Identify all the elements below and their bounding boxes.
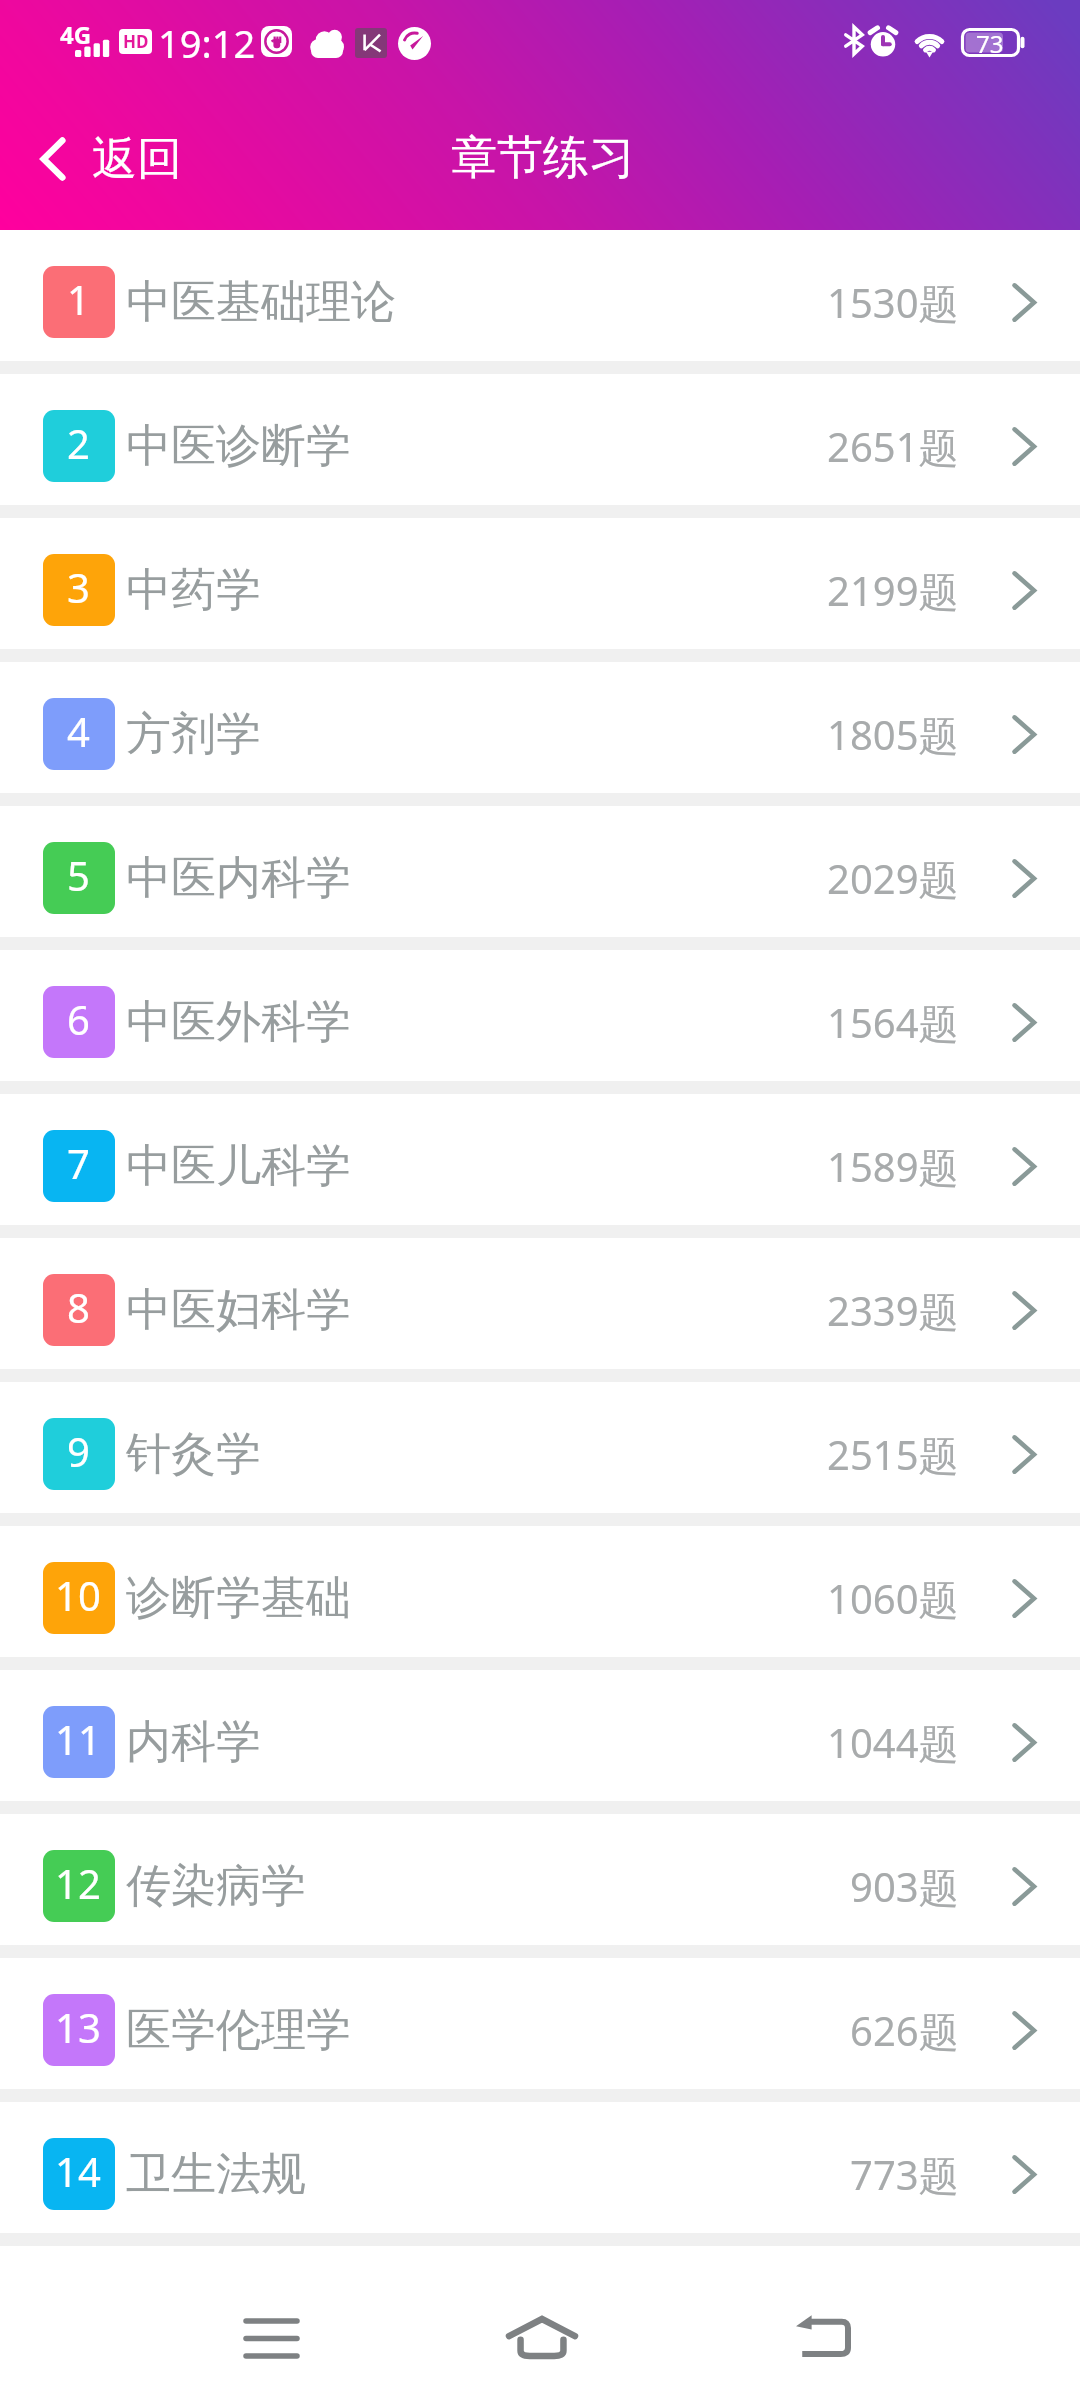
button[interactable]: 3 — [0, 518, 1080, 662]
staticText: 4G — [60, 18, 92, 51]
staticText: 诊断学基础 — [126, 1570, 351, 1627]
staticText: 12 — [55, 1856, 101, 1910]
staticText: 方剂学 — [126, 706, 261, 763]
staticText: 1060题 — [827, 1571, 959, 1626]
staticText: 10 — [55, 1568, 101, 1622]
staticText: 19:12 — [158, 17, 256, 69]
staticText: 针灸学 — [126, 1426, 261, 1483]
staticText: 中医妇科学 — [126, 1282, 351, 1339]
button[interactable]: 1 — [0, 230, 1080, 374]
staticText: 1044题 — [827, 1715, 959, 1770]
button[interactable]: 4 — [0, 662, 1080, 806]
staticText: HD — [123, 30, 149, 53]
button[interactable]: 10 — [0, 1526, 1080, 1670]
button[interactable]: 11 — [0, 1670, 1080, 1814]
staticText: 2339题 — [827, 1283, 959, 1338]
button[interactable]: 12 — [0, 1814, 1080, 1958]
staticText: 2199题 — [827, 563, 959, 618]
staticText: 返回 — [92, 131, 182, 188]
button[interactable]: 14 — [0, 2102, 1080, 2246]
staticText: 内科学 — [126, 1714, 261, 1771]
staticText: 73 — [976, 27, 1004, 56]
staticText: 医学伦理学 — [126, 2002, 351, 2059]
staticText: 2515题 — [827, 1427, 959, 1482]
button[interactable]: 返回 — [0, 84, 206, 234]
button[interactable]: 2 — [0, 374, 1080, 518]
staticText: 14 — [55, 2144, 101, 2198]
staticText: 2 — [67, 416, 90, 470]
staticText: 903题 — [850, 1859, 959, 1914]
staticText: 中医内科学 — [126, 850, 351, 907]
staticText: 1564题 — [827, 995, 959, 1050]
staticText: 2651题 — [827, 419, 959, 474]
staticText: 6 — [67, 992, 90, 1046]
staticText: 传染病学 — [126, 1858, 306, 1915]
button[interactable]: 8 — [0, 1238, 1080, 1382]
staticText: 7 — [67, 1136, 90, 1190]
button[interactable]: 5 — [0, 806, 1080, 950]
staticText: 11 — [55, 1712, 101, 1766]
staticText: 中医基础理论 — [126, 274, 396, 331]
staticText: 773题 — [850, 2147, 959, 2202]
staticText: 1530题 — [827, 275, 959, 330]
button[interactable]: 13 — [0, 1958, 1080, 2102]
staticText: 1589题 — [827, 1139, 959, 1194]
staticText: 1 — [67, 272, 90, 326]
staticText: 5 — [67, 848, 90, 902]
staticText: 3 — [67, 560, 90, 614]
button[interactable]: Home — [477, 2272, 607, 2400]
staticText: 中药学 — [126, 562, 261, 619]
staticText: 1805题 — [827, 707, 959, 762]
staticText: 章节练习 — [451, 129, 635, 187]
staticText: 4 — [67, 704, 90, 758]
staticText: 8 — [67, 1280, 90, 1334]
staticText: 13 — [55, 2000, 101, 2054]
staticText: 9 — [67, 1424, 90, 1478]
button[interactable]: 9 — [0, 1382, 1080, 1526]
staticText: 626题 — [850, 2003, 959, 2058]
staticText: 中医儿科学 — [126, 1138, 351, 1195]
button[interactable]: Back — [757, 2272, 887, 2400]
staticText: 2029题 — [827, 851, 959, 906]
button[interactable]: 7 — [0, 1094, 1080, 1238]
staticText: 中医诊断学 — [126, 418, 351, 475]
staticText: 卫生法规 — [126, 2146, 306, 2203]
button[interactable]: Recent apps — [206, 2273, 336, 2400]
staticText: 中医外科学 — [126, 994, 351, 1051]
button[interactable]: 6 — [0, 950, 1080, 1094]
